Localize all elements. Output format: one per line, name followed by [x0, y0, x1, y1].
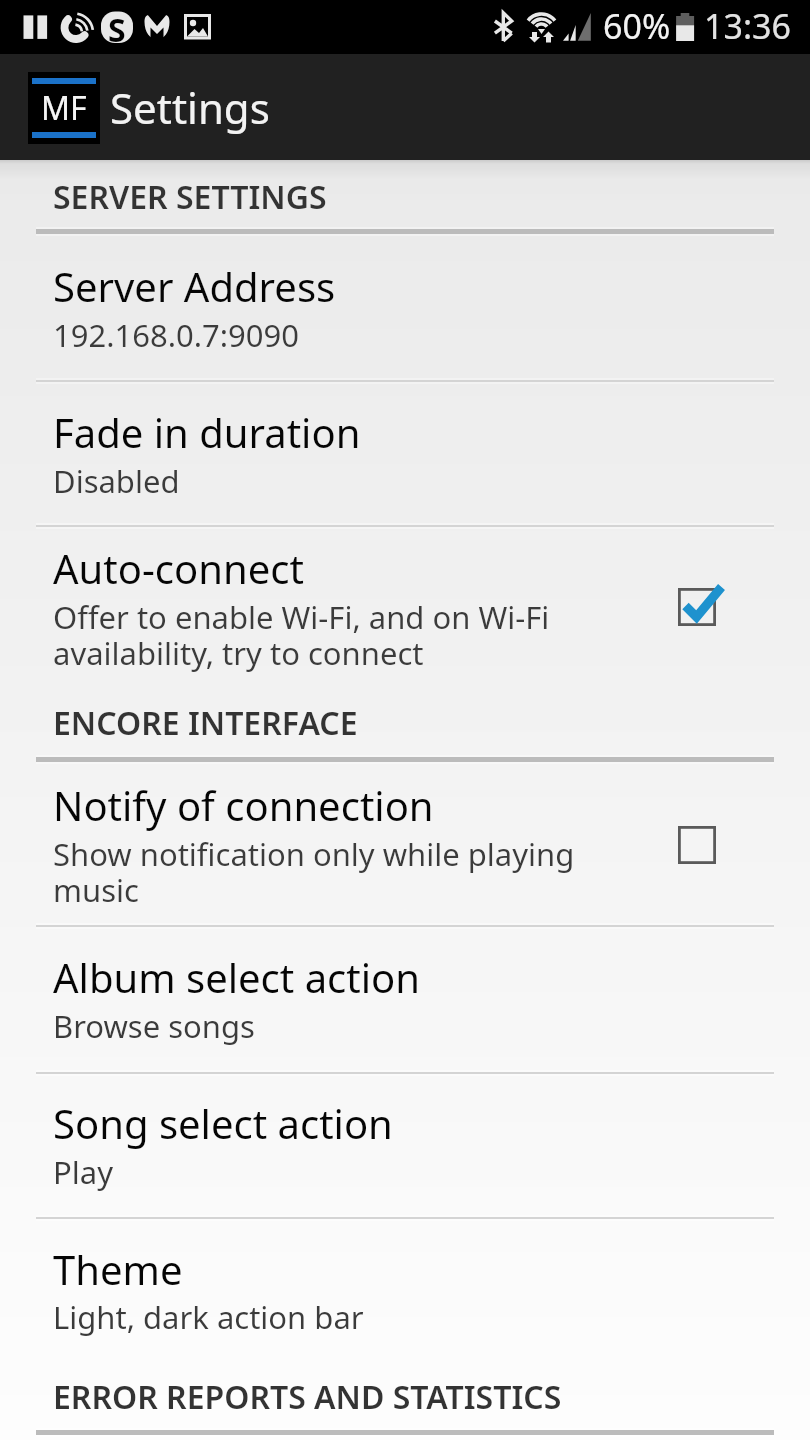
staticText: MF: [41, 86, 87, 130]
staticText: Fade in duration: [53, 405, 361, 459]
staticText: music: [53, 869, 139, 911]
staticText: SERVER SETTINGS: [53, 175, 327, 219]
button[interactable]: Server Address: [0, 234, 810, 380]
staticText: Album select action: [53, 950, 420, 1004]
button[interactable]: Song select action: [0, 1072, 810, 1217]
staticText: ERROR REPORTS AND STATISTICS: [53, 1375, 562, 1419]
staticText: Song select action: [53, 1096, 393, 1150]
button[interactable]: Album select action: [0, 925, 810, 1072]
staticText: 13:36: [704, 3, 791, 49]
staticText: 60%: [603, 3, 671, 49]
staticText: availability, try to connect: [53, 632, 424, 674]
staticText: Theme: [53, 1242, 183, 1296]
staticText: ENCORE INTERFACE: [53, 701, 358, 745]
staticText: Light, dark action bar: [53, 1296, 364, 1338]
button[interactable]: Auto-connect: [0, 525, 810, 700]
button[interactable]: Navigate up: [28, 72, 100, 144]
staticText: Show notification only while playing: [53, 833, 575, 875]
button[interactable]: Unchecked: [652, 800, 742, 890]
button[interactable]: Fade in duration: [0, 380, 810, 525]
staticText: Browse songs: [53, 1005, 255, 1047]
staticText: Offer to enable Wi-Fi, and on Wi-Fi: [53, 596, 550, 638]
staticText: Auto-connect: [53, 541, 304, 595]
button[interactable]: Notify of connection: [0, 762, 810, 925]
staticText: Notify of connection: [53, 778, 434, 832]
staticText: S: [108, 8, 126, 52]
staticText: Settings: [110, 79, 270, 136]
staticText: Play: [53, 1151, 113, 1193]
staticText: 192.168.0.7:9090: [53, 314, 300, 356]
staticText: Disabled: [53, 460, 180, 502]
staticText: Server Address: [53, 259, 336, 313]
button[interactable]: Checked: [652, 562, 742, 652]
button[interactable]: Theme: [0, 1217, 810, 1360]
